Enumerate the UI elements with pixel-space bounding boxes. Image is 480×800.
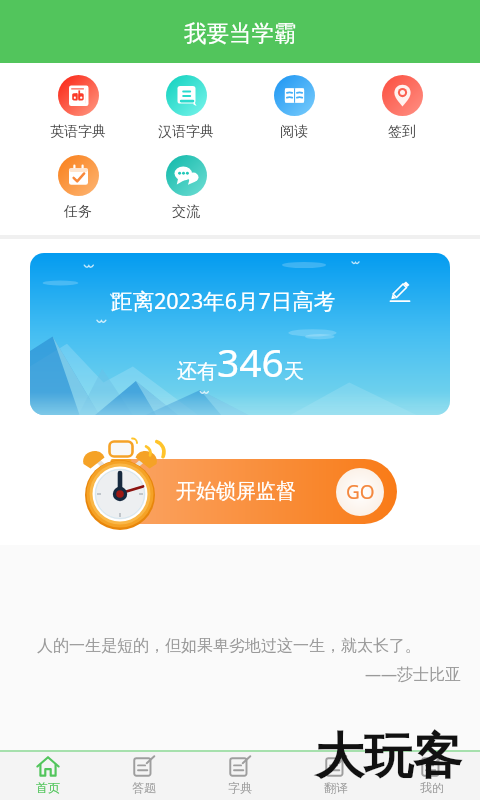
button[interactable]: 开始锁屏监督 xyxy=(92,459,397,524)
staticText: 我要当学霸 xyxy=(184,19,297,47)
button[interactable]: 任务 xyxy=(24,155,132,221)
staticText: 签到 xyxy=(388,123,416,141)
staticText: 大玩客 xyxy=(315,726,462,788)
staticText: 阅读 xyxy=(280,123,308,141)
staticText: 交流 xyxy=(172,203,200,221)
staticText: 距离2023年6月7日高考 xyxy=(111,286,336,315)
staticText: 346 xyxy=(217,335,284,388)
staticText: 我的 xyxy=(420,780,444,795)
button[interactable]: 距离2023年6月7日高考 xyxy=(30,253,450,415)
button[interactable]: 汉语字典 xyxy=(132,75,240,141)
staticText: 首页 xyxy=(36,780,60,795)
button[interactable]: 交流 xyxy=(132,155,240,221)
staticText: 字典 xyxy=(228,780,252,795)
staticText: 任务 xyxy=(64,203,92,221)
button[interactable]: 英语字典 xyxy=(24,75,132,141)
button[interactable]: 翻译 xyxy=(288,752,384,800)
staticText: ——莎士比亚 xyxy=(0,663,461,685)
staticText: 英语字典 xyxy=(50,123,106,141)
button[interactable]: Edit exam date xyxy=(388,279,412,303)
button[interactable]: 首页 xyxy=(0,752,96,800)
button[interactable]: GO xyxy=(336,468,384,516)
staticText: 答题 xyxy=(132,780,156,795)
staticText: 汉语字典 xyxy=(158,123,214,141)
button[interactable]: 答题 xyxy=(96,752,192,800)
button[interactable]: 我的 xyxy=(384,752,480,800)
staticText: 人的一生是短的，但如果卑劣地过这一生，就太长了。 xyxy=(37,636,421,656)
staticText: 天 xyxy=(284,359,304,384)
button[interactable]: 阅读 xyxy=(240,75,348,141)
staticText: 翻译 xyxy=(324,780,348,795)
button[interactable]: 签到 xyxy=(348,75,456,141)
staticText: 还有 xyxy=(177,359,217,384)
staticText: GO xyxy=(346,479,375,505)
staticText: 开始锁屏监督 xyxy=(176,479,296,504)
button[interactable]: 字典 xyxy=(192,752,288,800)
